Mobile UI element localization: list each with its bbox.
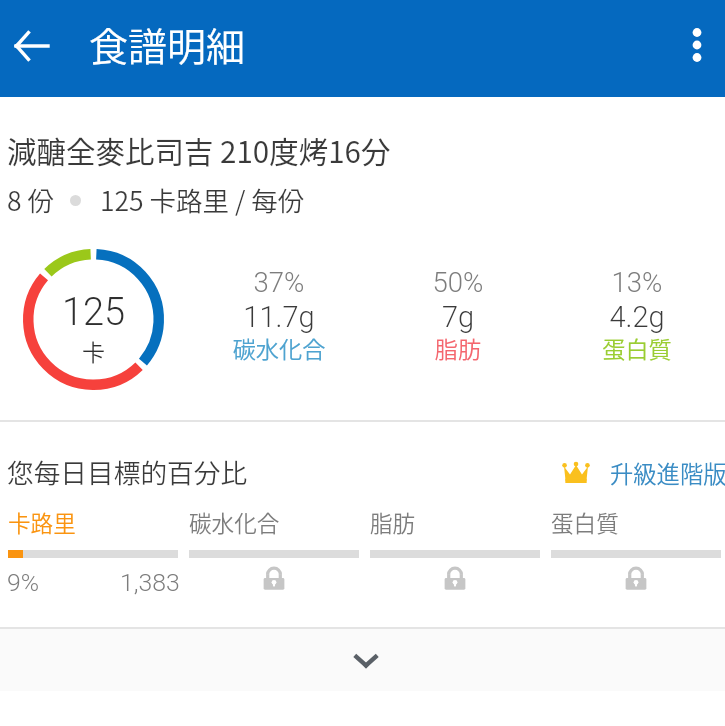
staticText: 升級進階版 bbox=[610, 456, 725, 490]
staticText: 7g bbox=[368, 300, 548, 334]
staticText: 4.2g bbox=[547, 300, 725, 334]
staticText: 50% bbox=[368, 266, 548, 298]
staticText: 碳水化合 bbox=[189, 506, 280, 539]
staticText: 9% bbox=[7, 568, 40, 597]
staticText: 1,383 bbox=[120, 568, 180, 597]
staticText: 11.7g bbox=[189, 300, 369, 334]
staticText: 13% bbox=[547, 266, 725, 298]
staticText: 卡 bbox=[23, 334, 164, 367]
staticText: 125 bbox=[23, 290, 164, 335]
staticText: 碳水化合 bbox=[189, 331, 369, 365]
button[interactable]: 升級進階版 bbox=[556, 455, 725, 491]
staticText: 脂肪 bbox=[370, 506, 416, 539]
staticText: 食譜明細 bbox=[89, 16, 246, 72]
staticText: 8 份 bbox=[7, 180, 54, 218]
staticText: 125 卡路里 / 每份 bbox=[100, 180, 305, 218]
staticText: 卡路里 bbox=[8, 506, 76, 539]
button[interactable]: More options bbox=[668, 16, 725, 74]
staticText: 37% bbox=[189, 266, 369, 298]
button[interactable]: Back bbox=[2, 16, 62, 76]
staticText: 脂肪 bbox=[368, 331, 548, 365]
staticText: 蛋白質 bbox=[547, 331, 725, 365]
staticText: 您每日目標的百分比 bbox=[7, 452, 248, 491]
staticText: 減醣全麥比司吉 210度烤16分 bbox=[7, 129, 391, 172]
button[interactable]: Expand bbox=[0, 629, 725, 691]
staticText: 蛋白質 bbox=[551, 506, 619, 539]
